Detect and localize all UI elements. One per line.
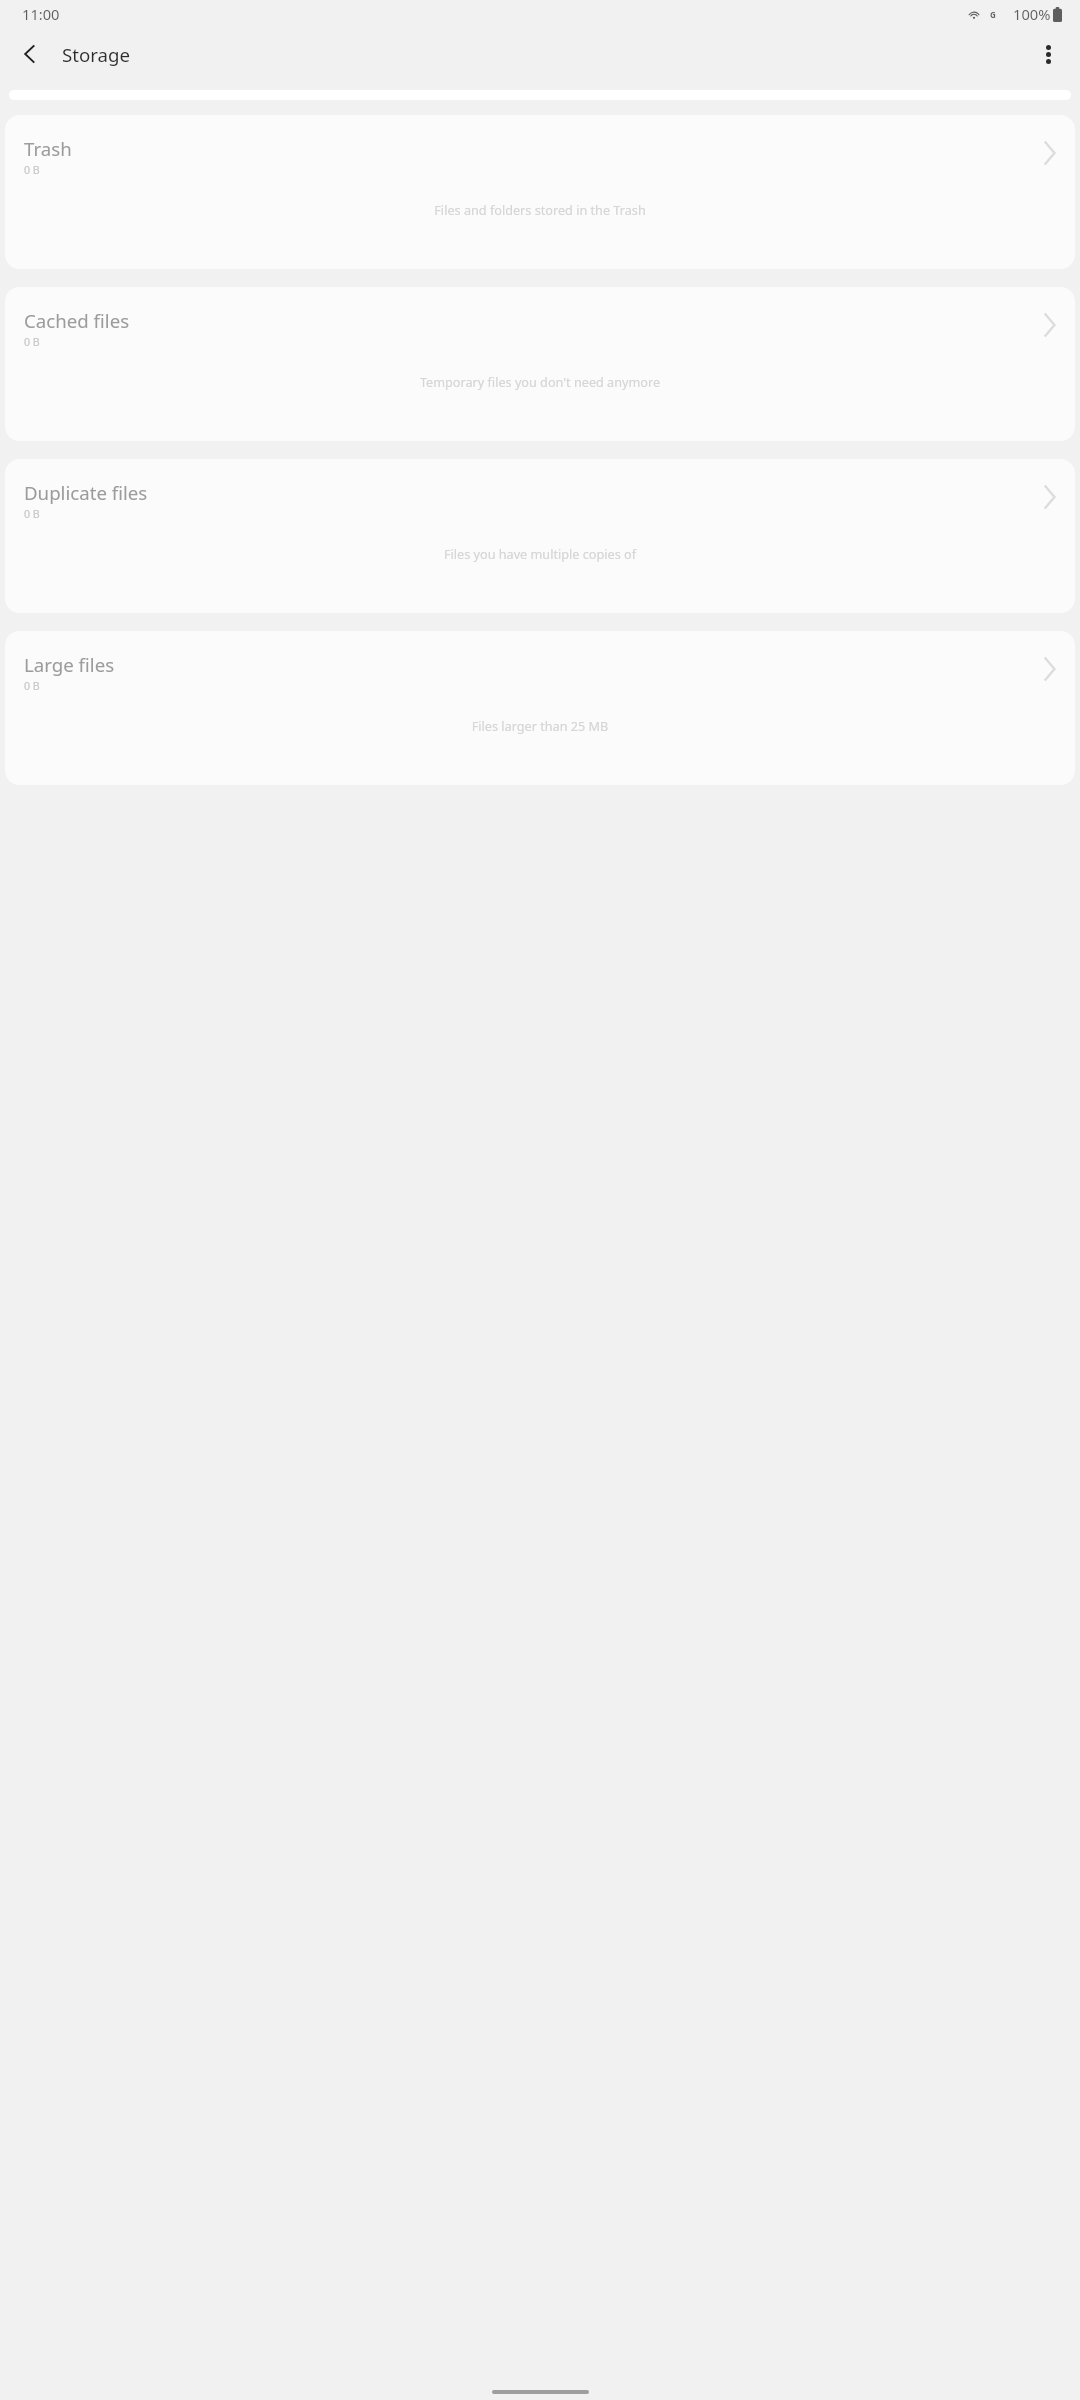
staticText: Temporary files you don't need anymore xyxy=(5,373,1075,390)
staticText: 0 B xyxy=(24,163,40,178)
staticText: Trash xyxy=(24,136,72,161)
staticText: 0 B xyxy=(24,335,40,350)
staticText: 0 B xyxy=(24,679,40,694)
staticText: Storage xyxy=(62,42,131,67)
staticText: G xyxy=(990,9,996,20)
button[interactable]: Duplicate files xyxy=(5,459,1075,613)
button[interactable]: Cached files xyxy=(5,287,1075,441)
staticText: 100% xyxy=(1013,4,1051,24)
staticText: Large files xyxy=(24,652,115,677)
staticText: Duplicate files xyxy=(24,480,148,505)
staticText: Files larger than 25 MB xyxy=(5,717,1075,734)
staticText: 11:00 xyxy=(22,4,60,24)
staticText: Cached files xyxy=(24,308,130,333)
button[interactable]: Large files xyxy=(5,631,1075,785)
button[interactable]: More options xyxy=(1026,32,1070,76)
staticText: Files and folders stored in the Trash xyxy=(5,201,1075,218)
button[interactable]: Back xyxy=(8,32,52,76)
staticText: Files you have multiple copies of xyxy=(5,545,1075,562)
button[interactable]: Trash xyxy=(5,115,1075,269)
staticText: 0 B xyxy=(24,507,40,522)
